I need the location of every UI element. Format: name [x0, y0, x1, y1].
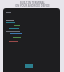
button[interactable]	[3, 8, 60, 72]
staticText: BUILT-IN TERMINAL ON YOUR ANDROID DEVICE	[15, 1, 50, 7]
